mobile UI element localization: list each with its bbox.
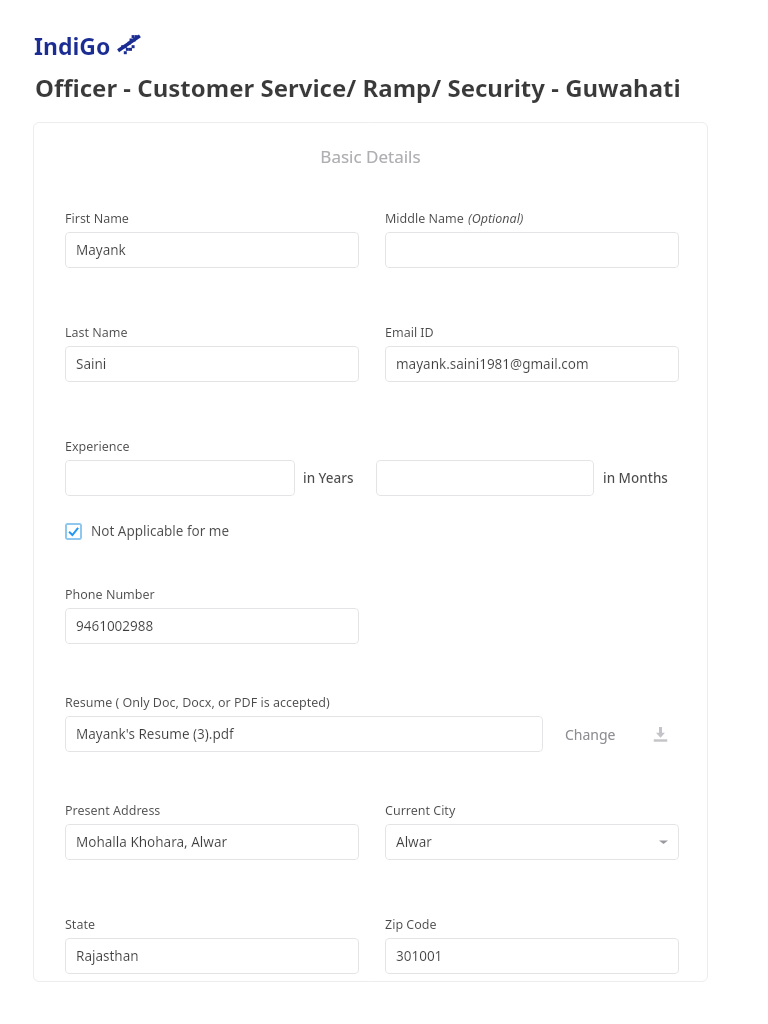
button[interactable]: 301001 — [385, 938, 679, 974]
staticText: (Optional) — [468, 210, 524, 227]
button[interactable] — [385, 232, 679, 268]
button[interactable]: Mayank — [65, 232, 359, 268]
staticText: Phone Number — [65, 586, 155, 603]
staticText: Last Name — [65, 324, 128, 341]
staticText: Present Address — [65, 802, 161, 819]
button[interactable]: Rajasthan — [65, 938, 359, 974]
button[interactable]: Saini — [65, 346, 359, 382]
staticText: Email ID — [385, 324, 434, 341]
button[interactable] — [65, 460, 295, 496]
staticText: in Years — [303, 469, 354, 487]
staticText: Zip Code — [385, 916, 437, 933]
button[interactable] — [376, 460, 594, 496]
staticText: Mohalla Khohara, Alwar — [76, 833, 228, 851]
staticText: Alwar — [396, 833, 432, 851]
staticText: Middle Name — [385, 210, 464, 227]
staticText: Rajasthan — [76, 947, 139, 965]
staticText: mayank.saini1981@gmail.com — [396, 355, 589, 373]
button[interactable]: Not Applicable for me — [65, 522, 230, 540]
button[interactable]: Download resume — [648, 722, 672, 746]
staticText: State — [65, 916, 95, 933]
staticText: 9461002988 — [76, 617, 154, 635]
button[interactable]: Mohalla Khohara, Alwar — [65, 824, 359, 860]
button[interactable]: Mayank's Resume (3).pdf — [65, 716, 543, 752]
staticText: Resume ( Only Doc, Docx, or PDF is accep… — [65, 694, 330, 711]
staticText: Current City — [385, 802, 456, 819]
staticText: Mayank's Resume (3).pdf — [76, 725, 234, 743]
staticText: Not Applicable for me — [91, 522, 230, 540]
staticText: First Name — [65, 210, 129, 227]
staticText: 301001 — [396, 947, 443, 965]
button[interactable]: mayank.saini1981@gmail.com — [385, 346, 679, 382]
staticText: Basic Details — [33, 145, 708, 168]
staticText: Change — [565, 725, 616, 744]
staticText: Mayank — [76, 241, 126, 259]
staticText: IndiGo — [34, 30, 111, 61]
staticText: in Months — [603, 469, 668, 487]
staticText: Saini — [76, 355, 107, 373]
staticText: Experience — [65, 438, 130, 455]
button[interactable]: Change — [561, 721, 620, 748]
button[interactable]: Alwar — [385, 824, 679, 860]
button[interactable]: 9461002988 — [65, 608, 359, 644]
staticText: Officer - Customer Service/ Ramp/ Securi… — [35, 71, 681, 104]
